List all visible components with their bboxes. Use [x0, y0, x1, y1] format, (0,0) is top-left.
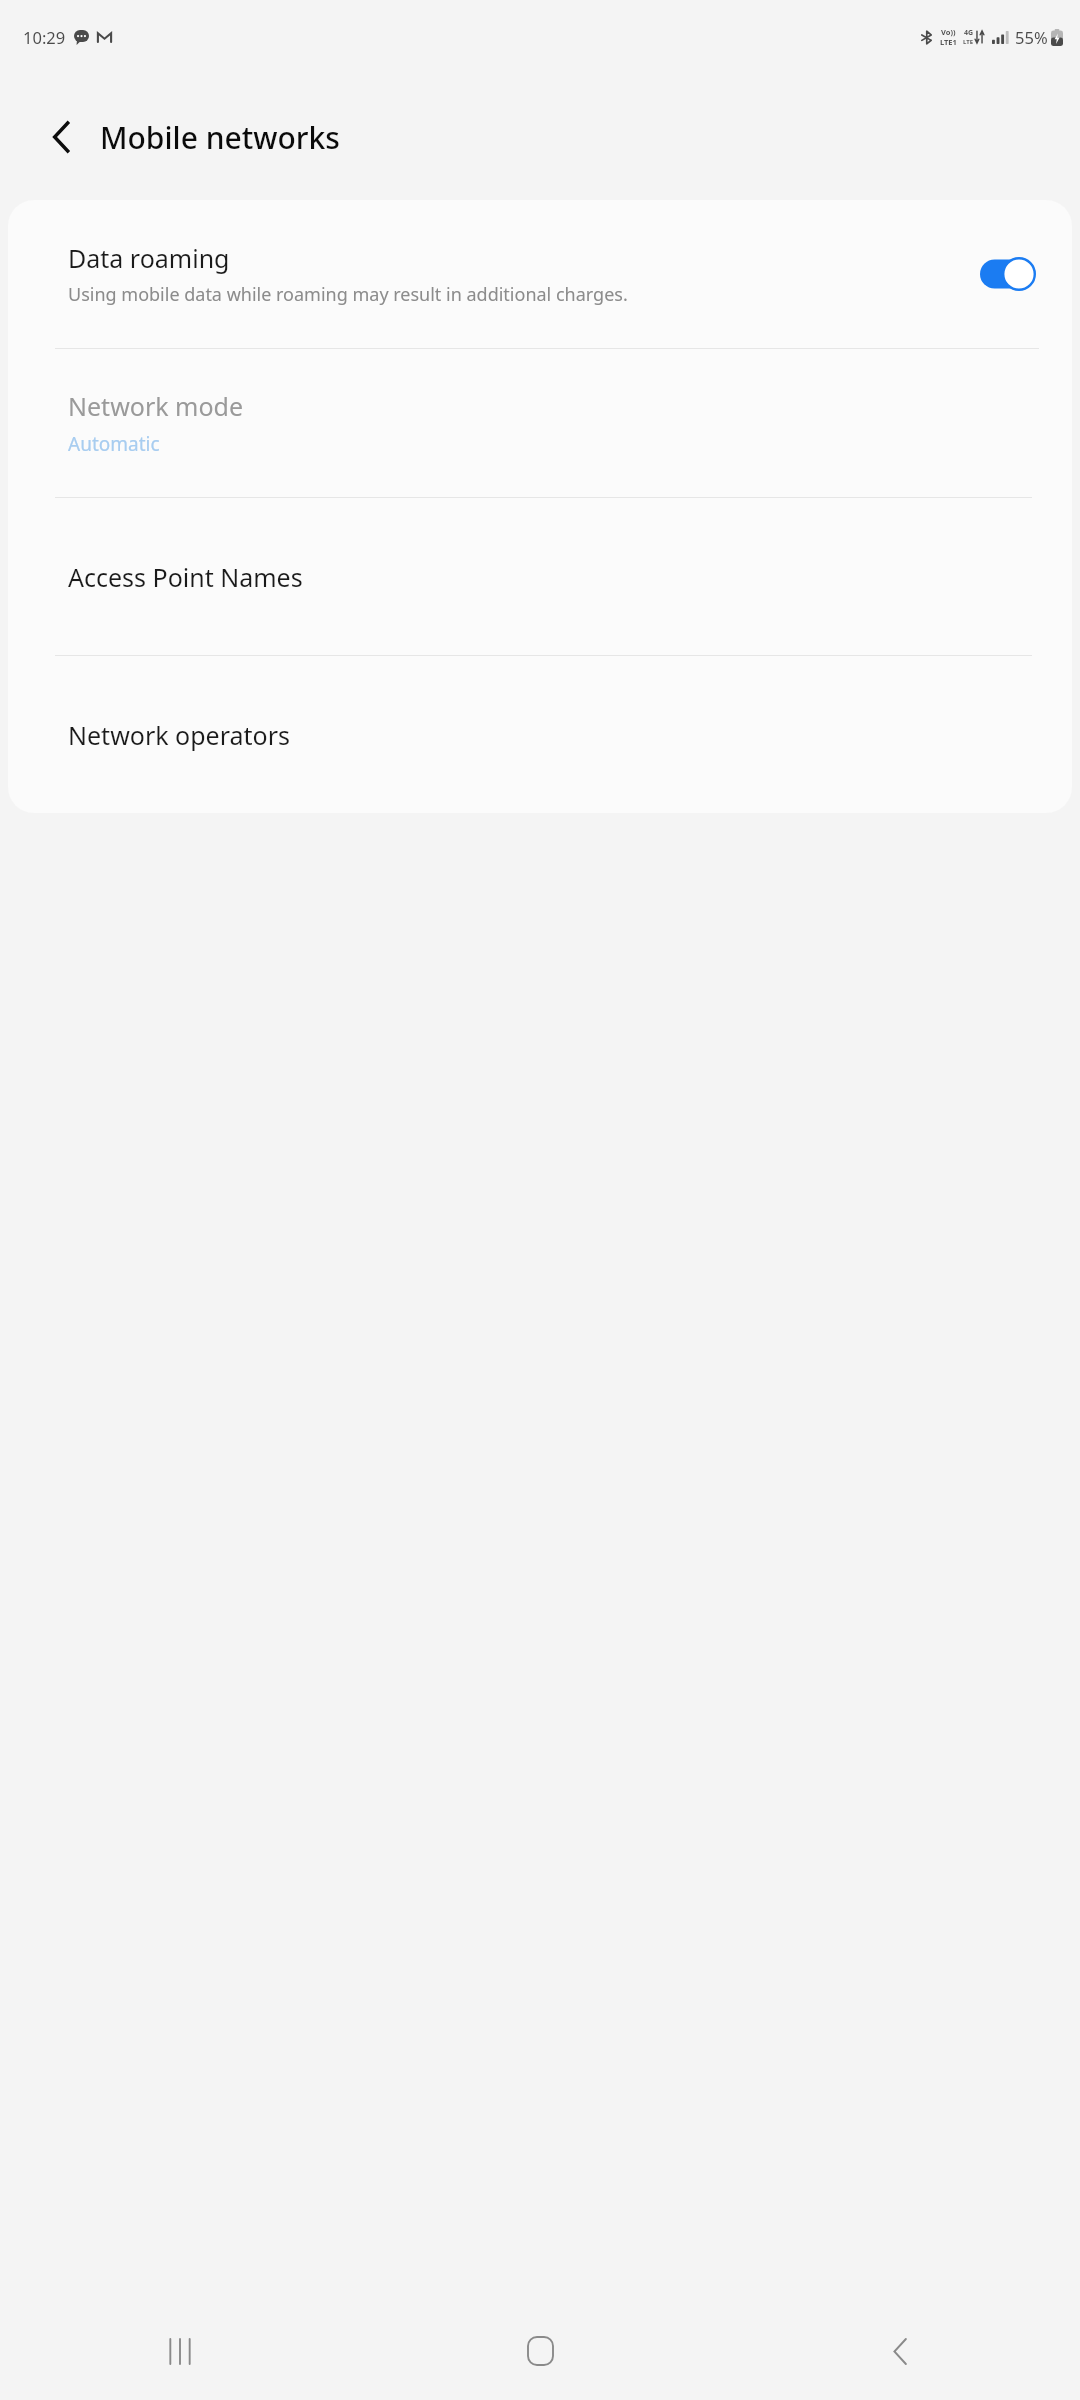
staticText: Network operators	[68, 718, 290, 752]
staticText: Mobile networks	[100, 117, 340, 158]
staticText: Vo))	[941, 27, 956, 37]
staticText: Automatic	[68, 431, 160, 457]
button[interactable]: Back	[38, 114, 84, 160]
button[interactable]: Recents	[0, 2302, 360, 2400]
staticText: Network mode	[68, 389, 244, 423]
button[interactable]: Back	[720, 2302, 1080, 2400]
staticText: 10:29	[23, 26, 66, 48]
staticText: Access Point Names	[68, 560, 303, 594]
button[interactable]: Data roaming toggle, on	[980, 257, 1036, 291]
staticText: LTE1	[940, 37, 957, 47]
button[interactable]: Network operators	[8, 656, 1072, 813]
button[interactable]: Network mode	[8, 349, 1072, 497]
button[interactable]: Data roaming	[8, 200, 1072, 348]
staticText: 4G	[964, 28, 974, 38]
button[interactable]: Home	[360, 2302, 720, 2400]
staticText: Data roaming	[68, 241, 230, 275]
button[interactable]: Access Point Names	[8, 498, 1072, 655]
staticText: LTE	[963, 38, 974, 46]
staticText: Using mobile data while roaming may resu…	[68, 282, 628, 307]
staticText: 55%	[1015, 26, 1048, 48]
